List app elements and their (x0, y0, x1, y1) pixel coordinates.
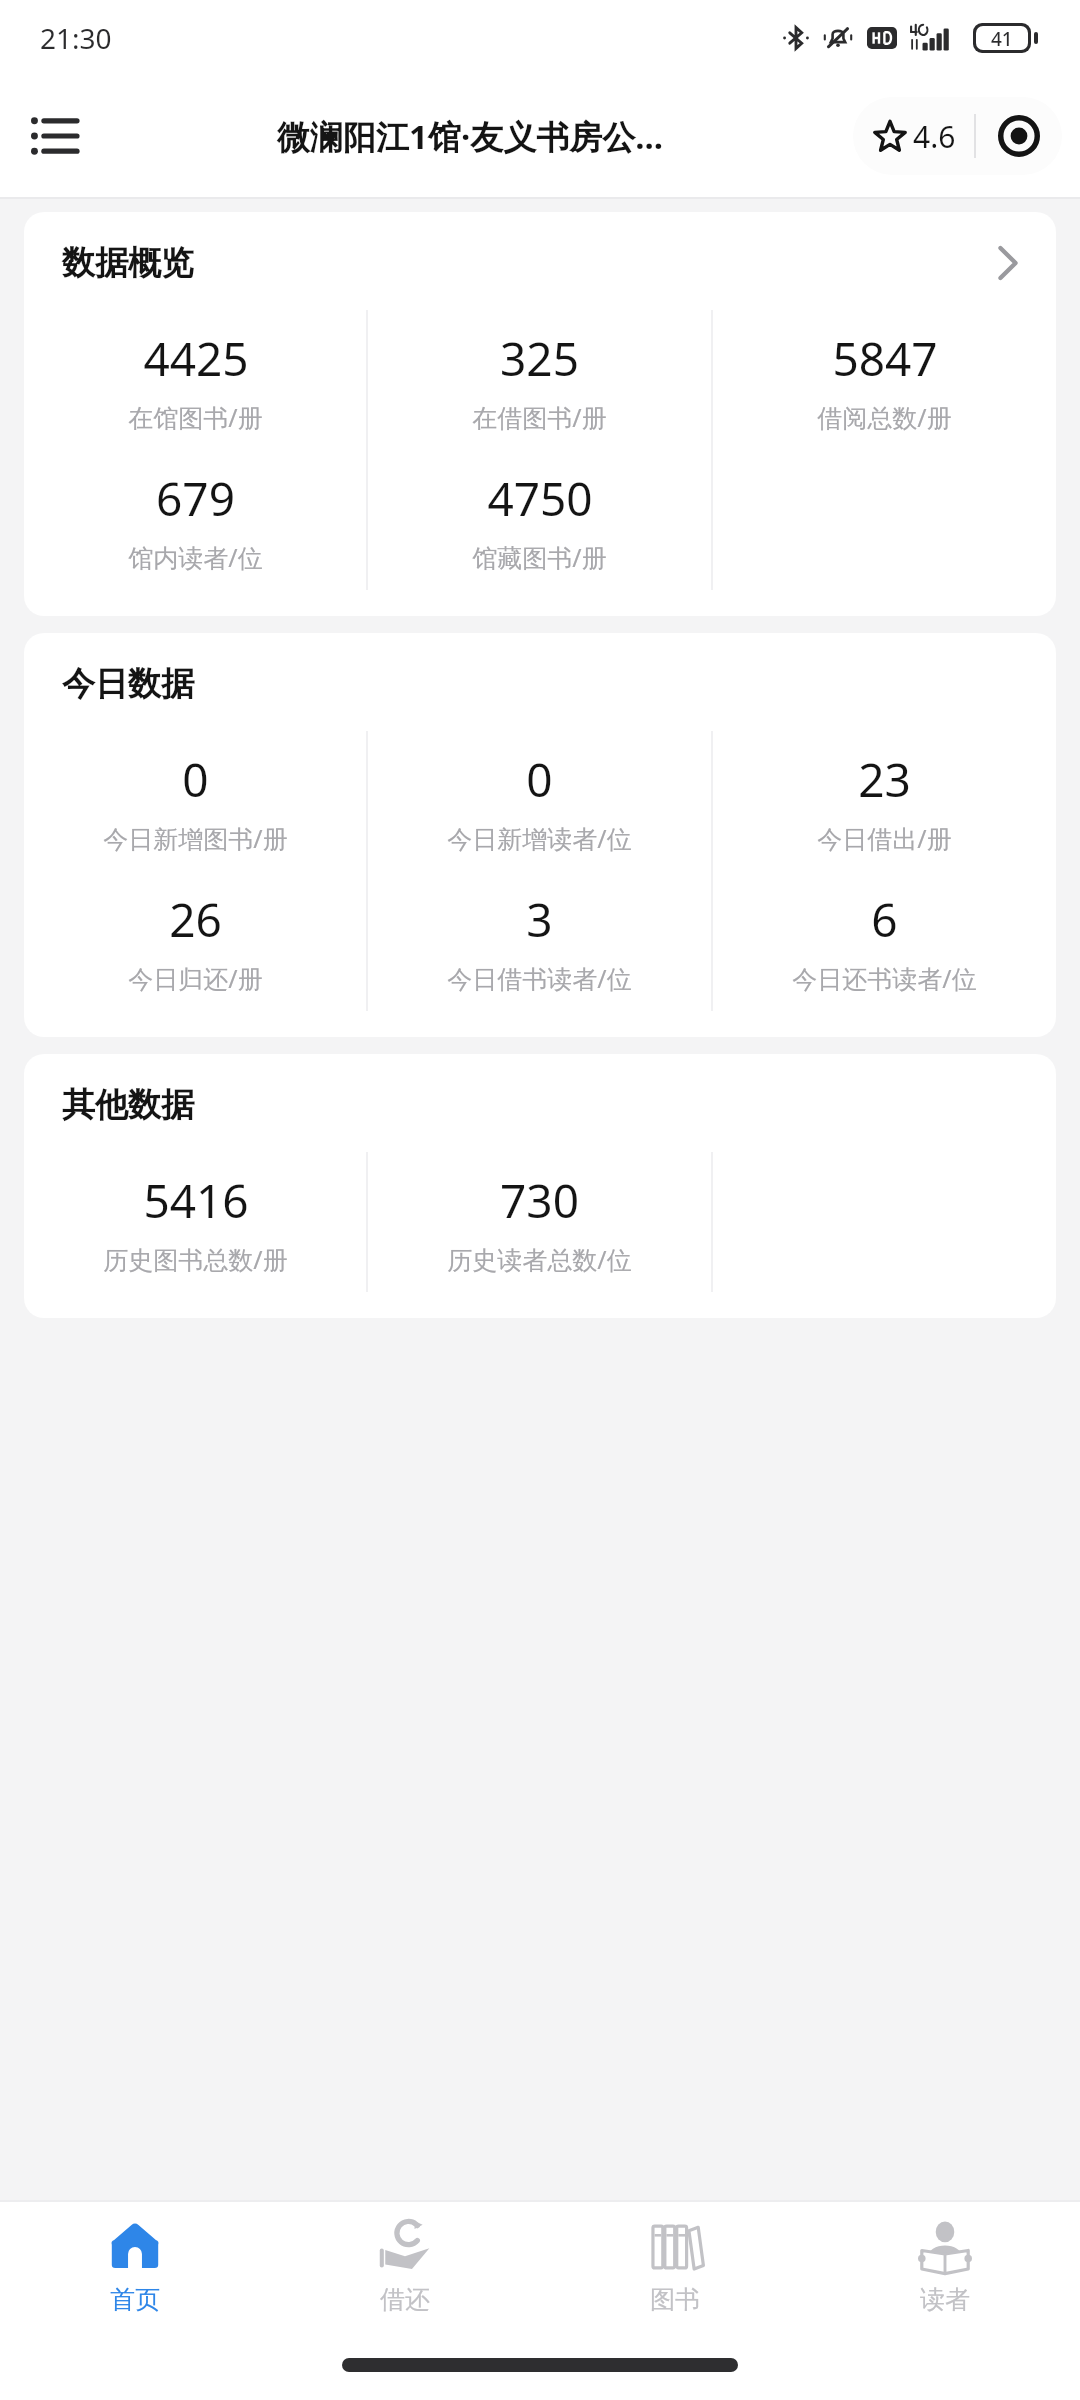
staticText: 借阅总数/册 (817, 400, 952, 434)
button[interactable]: Record (976, 97, 1062, 175)
staticText: 今日数据 (62, 663, 194, 705)
staticText: 图书 (650, 2284, 700, 2315)
staticText: 23 (858, 748, 911, 811)
staticText: 6 (871, 888, 898, 951)
button[interactable]: 4.6 (853, 97, 974, 175)
staticText: 41 (991, 26, 1013, 50)
staticText: 其他数据 (62, 1084, 194, 1126)
staticText: 历史图书总数/册 (103, 1242, 288, 1276)
staticText: 325 (500, 327, 579, 390)
button[interactable]: 数据概览 (24, 242, 1056, 284)
staticText: 馆内读者/位 (128, 540, 263, 574)
button[interactable]: 首页 (0, 2202, 270, 2330)
staticText: 借还 (380, 2284, 430, 2315)
button[interactable]: Menu (18, 100, 90, 172)
staticText: 历史读者总数/位 (447, 1242, 632, 1276)
staticText: 在借图书/册 (472, 400, 607, 434)
staticText: 微澜阳江1馆·友义书房公... (277, 114, 663, 159)
staticText: 0 (182, 748, 209, 811)
staticText: 首页 (110, 2284, 160, 2315)
staticText: 4425 (143, 327, 249, 390)
staticText: 5847 (832, 327, 938, 390)
staticText: 今日新增图书/册 (103, 821, 288, 855)
button[interactable]: 图书 (540, 2202, 810, 2330)
staticText: 今日还书读者/位 (792, 961, 977, 995)
staticText: 21:30 (40, 19, 112, 57)
staticText: 0 (526, 748, 553, 811)
button[interactable]: 读者 (810, 2202, 1080, 2330)
staticText: 读者 (920, 2284, 970, 2315)
staticText: 26 (169, 888, 222, 951)
staticText: 今日归还/册 (128, 961, 263, 995)
staticText: 3 (526, 888, 553, 951)
staticText: 679 (156, 467, 235, 530)
staticText: 今日新增读者/位 (447, 821, 632, 855)
staticText: 数据概览 (62, 242, 194, 284)
staticText: 4750 (487, 467, 593, 530)
staticText: 馆藏图书/册 (472, 540, 607, 574)
staticText: 在馆图书/册 (128, 400, 263, 434)
button[interactable]: 借还 (270, 2202, 540, 2330)
staticText: 今日借出/册 (817, 821, 952, 855)
staticText: 4.6 (913, 116, 956, 157)
staticText: 5416 (143, 1169, 249, 1232)
staticText: 730 (500, 1169, 579, 1232)
staticText: 今日借书读者/位 (447, 961, 632, 995)
